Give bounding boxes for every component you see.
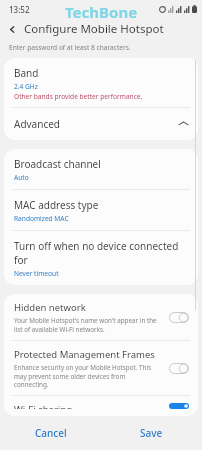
button[interactable]: Switch off	[169, 363, 189, 374]
button[interactable]: Band	[4, 58, 198, 107]
staticText: Broadcast channel	[14, 157, 101, 171]
staticText: Protected Management Frames	[14, 348, 155, 361]
button[interactable]: Switch on	[169, 403, 189, 409]
staticText: MAC address type	[14, 198, 99, 212]
staticText: Cancel	[35, 426, 67, 440]
button[interactable]: Wi-Fi sharing	[4, 396, 198, 416]
button[interactable]: Protected Management Frames	[4, 341, 198, 395]
staticText: Randomized MAC	[14, 214, 69, 223]
staticText: Auto	[14, 173, 29, 182]
staticText: Configure Mobile Hotspot	[24, 21, 164, 37]
staticText: Advanced	[14, 117, 179, 131]
staticText: Enhance security on your Mobile Hotspot.…	[14, 363, 161, 388]
staticText: Band	[14, 66, 39, 80]
button[interactable]: Save	[101, 416, 202, 450]
button[interactable]: Cancel	[0, 416, 101, 450]
button[interactable]: Switch off	[169, 312, 189, 323]
staticText: Save	[140, 426, 163, 440]
staticText: Your Mobile Hotspot's name won't appear …	[14, 316, 161, 333]
staticText: Hidden network	[14, 301, 86, 314]
button[interactable]: Broadcast channel	[4, 149, 198, 189]
staticText: Enter password of at least 8 characters.	[9, 43, 131, 52]
staticText: Other bands provide better performance.	[14, 92, 143, 101]
staticText: Wi-Fi sharing	[14, 403, 73, 409]
staticText: 13:52	[9, 4, 30, 15]
staticText: Never timeout	[14, 269, 59, 278]
button[interactable]: MAC address type	[4, 190, 198, 230]
button[interactable]: Hidden network	[4, 294, 198, 340]
staticText: Turn off when no device connected for	[14, 239, 188, 267]
button[interactable]: Back	[0, 18, 24, 40]
button[interactable]: Turn off when no device connected for	[4, 231, 198, 285]
staticText: TechBone	[65, 2, 138, 18]
button[interactable]: Advanced	[4, 108, 198, 140]
staticText: 2.4 GHz	[14, 82, 38, 91]
